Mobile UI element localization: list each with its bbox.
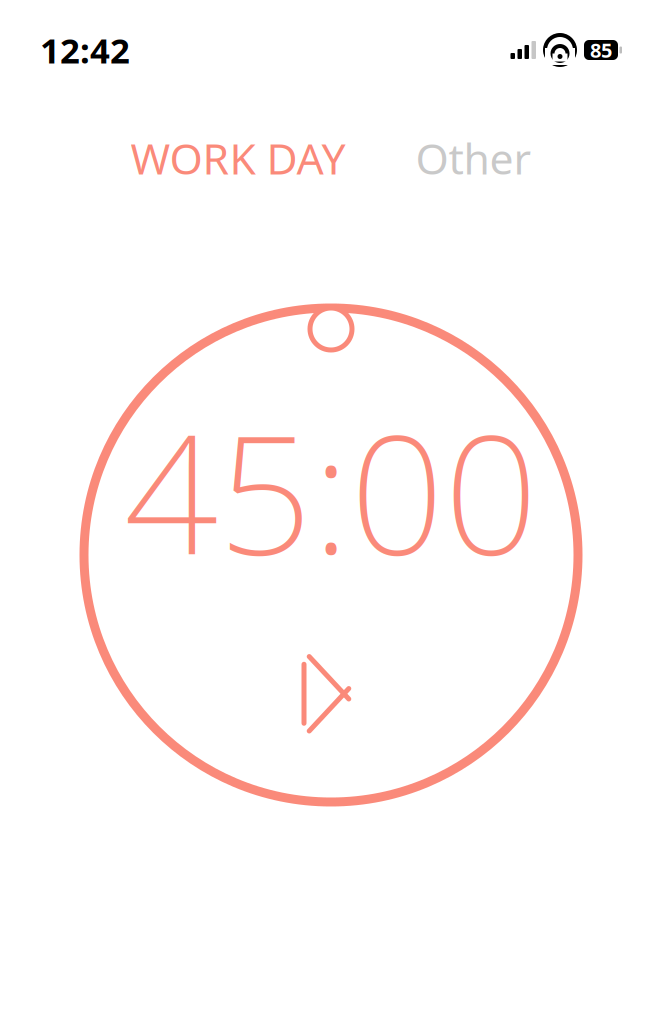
button[interactable]: Other	[415, 130, 531, 186]
staticText: Other	[415, 130, 531, 186]
staticText: 45:00	[124, 380, 538, 600]
staticText: 12:42	[40, 27, 130, 73]
staticText: 85	[590, 37, 612, 63]
staticText: WORK DAY	[130, 130, 345, 186]
button[interactable]: Adjust duration	[310, 308, 352, 350]
button[interactable]: WORK DAY	[130, 130, 345, 186]
button[interactable]: Start timer	[283, 646, 379, 742]
